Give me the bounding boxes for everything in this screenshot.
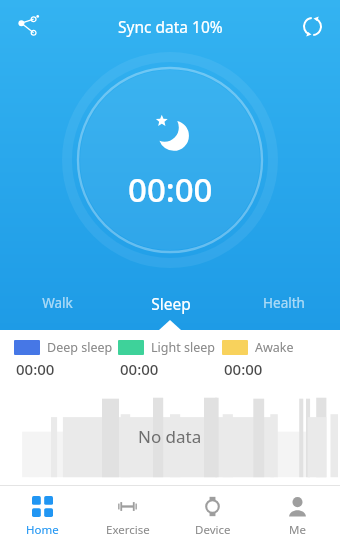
staticText: 00:00 <box>128 167 213 212</box>
staticText: Awake <box>255 339 294 356</box>
button[interactable]: Deep sleep <box>14 339 118 379</box>
staticText: Sleep <box>151 293 191 314</box>
staticText: Home <box>26 522 59 538</box>
button[interactable]: Walk <box>0 286 114 320</box>
staticText: Exercise <box>106 522 150 538</box>
button[interactable]: Home <box>0 486 85 548</box>
button[interactable]: Share <box>8 6 48 46</box>
staticText: Health <box>263 294 305 312</box>
staticText: Light sleep <box>151 339 215 356</box>
button[interactable]: Device <box>170 486 255 548</box>
button[interactable]: Awake <box>222 339 326 379</box>
staticText: 00:00 <box>224 359 263 379</box>
staticText: 00:00 <box>16 359 55 379</box>
staticText: Walk <box>42 294 73 312</box>
button[interactable]: Refresh <box>292 6 332 46</box>
staticText: Sync data 10% <box>118 16 223 37</box>
staticText: Deep sleep <box>47 339 113 356</box>
staticText: 00:00 <box>120 359 159 379</box>
button[interactable]: Light sleep <box>118 339 222 379</box>
button[interactable]: Me <box>255 486 340 548</box>
button[interactable]: Health <box>227 286 340 320</box>
button[interactable]: Sleep <box>114 286 227 320</box>
staticText: No data <box>138 425 202 448</box>
button[interactable]: Exercise <box>85 486 170 548</box>
staticText: Device <box>195 522 231 538</box>
staticText: Me <box>289 522 306 538</box>
